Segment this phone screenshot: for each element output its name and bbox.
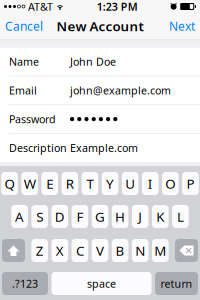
staticText: E xyxy=(46,175,53,192)
staticText: F xyxy=(76,208,83,225)
staticText: .?123 xyxy=(12,276,38,291)
staticText: I xyxy=(148,175,153,192)
staticText: Description xyxy=(9,141,67,155)
staticText: J xyxy=(138,208,142,225)
staticText: L xyxy=(177,208,184,225)
button[interactable]: K xyxy=(152,205,169,228)
button[interactable]: Description xyxy=(0,134,200,162)
button[interactable]: Shift xyxy=(2,239,25,262)
staticText: S xyxy=(36,208,43,225)
staticText: return xyxy=(160,276,192,291)
button[interactable]: I xyxy=(142,172,158,195)
staticText: U xyxy=(125,175,135,192)
button[interactable]: Z xyxy=(31,239,48,262)
button[interactable]: U xyxy=(122,172,138,195)
button[interactable]: E xyxy=(41,172,58,195)
staticText: N xyxy=(135,242,145,259)
button[interactable]: W xyxy=(21,172,38,195)
staticText: Email xyxy=(9,83,37,97)
button[interactable]: Q xyxy=(1,172,18,195)
button[interactable]: N xyxy=(132,239,148,262)
staticText: W xyxy=(24,175,36,192)
button[interactable]: R xyxy=(62,172,78,195)
button[interactable]: V xyxy=(92,239,108,262)
button[interactable]: F xyxy=(72,205,88,228)
staticText: Cancel xyxy=(5,18,43,34)
button[interactable]: Password xyxy=(0,105,200,134)
staticText: V xyxy=(96,242,104,259)
button[interactable]: D xyxy=(51,205,68,228)
button[interactable]: Y xyxy=(102,172,118,195)
staticText: O xyxy=(165,175,175,192)
staticText: B xyxy=(116,242,125,259)
staticText: 1:23 PM xyxy=(97,0,138,14)
staticText: Z xyxy=(36,242,44,259)
staticText: R xyxy=(66,175,74,192)
button[interactable]: X xyxy=(51,239,68,262)
button[interactable]: L xyxy=(172,205,189,228)
button[interactable]: S xyxy=(31,205,48,228)
staticText: C xyxy=(76,242,84,259)
staticText: M xyxy=(154,242,166,259)
button[interactable]: Delete xyxy=(175,239,198,262)
button[interactable]: J xyxy=(132,205,148,228)
button[interactable]: M xyxy=(152,239,169,262)
staticText: Example.com xyxy=(70,141,138,155)
staticText: New Account xyxy=(56,17,143,35)
staticText: John Doe xyxy=(70,55,116,69)
button[interactable]: .?123 xyxy=(2,272,48,295)
button[interactable]: space xyxy=(51,272,151,295)
button[interactable]: H xyxy=(112,205,128,228)
staticText: K xyxy=(156,208,164,225)
staticText: X xyxy=(56,242,64,259)
button[interactable]: Name xyxy=(0,48,200,76)
button[interactable]: A xyxy=(11,205,28,228)
staticText: Y xyxy=(106,175,114,192)
button[interactable]: P xyxy=(182,172,199,195)
button[interactable]: B xyxy=(112,239,128,262)
staticText: H xyxy=(115,208,125,225)
button[interactable]: Cancel xyxy=(0,13,48,39)
button[interactable]: return xyxy=(155,272,198,295)
staticText: T xyxy=(86,175,93,192)
button[interactable]: O xyxy=(162,172,179,195)
staticText: AT&T xyxy=(28,0,53,14)
button[interactable]: C xyxy=(72,239,88,262)
staticText: D xyxy=(55,208,65,225)
button[interactable]: Next xyxy=(164,13,200,39)
staticText: Name xyxy=(9,55,39,69)
button[interactable]: G xyxy=(92,205,108,228)
staticText: A xyxy=(15,208,24,225)
staticText: space xyxy=(87,276,116,291)
button[interactable]: Email xyxy=(0,76,200,105)
staticText: Q xyxy=(5,175,15,192)
staticText: G xyxy=(95,208,105,225)
staticText: Password xyxy=(9,112,56,126)
button[interactable]: T xyxy=(82,172,98,195)
staticText: P xyxy=(186,175,194,192)
staticText: john@example.com xyxy=(70,83,171,97)
staticText: Next xyxy=(169,18,195,34)
